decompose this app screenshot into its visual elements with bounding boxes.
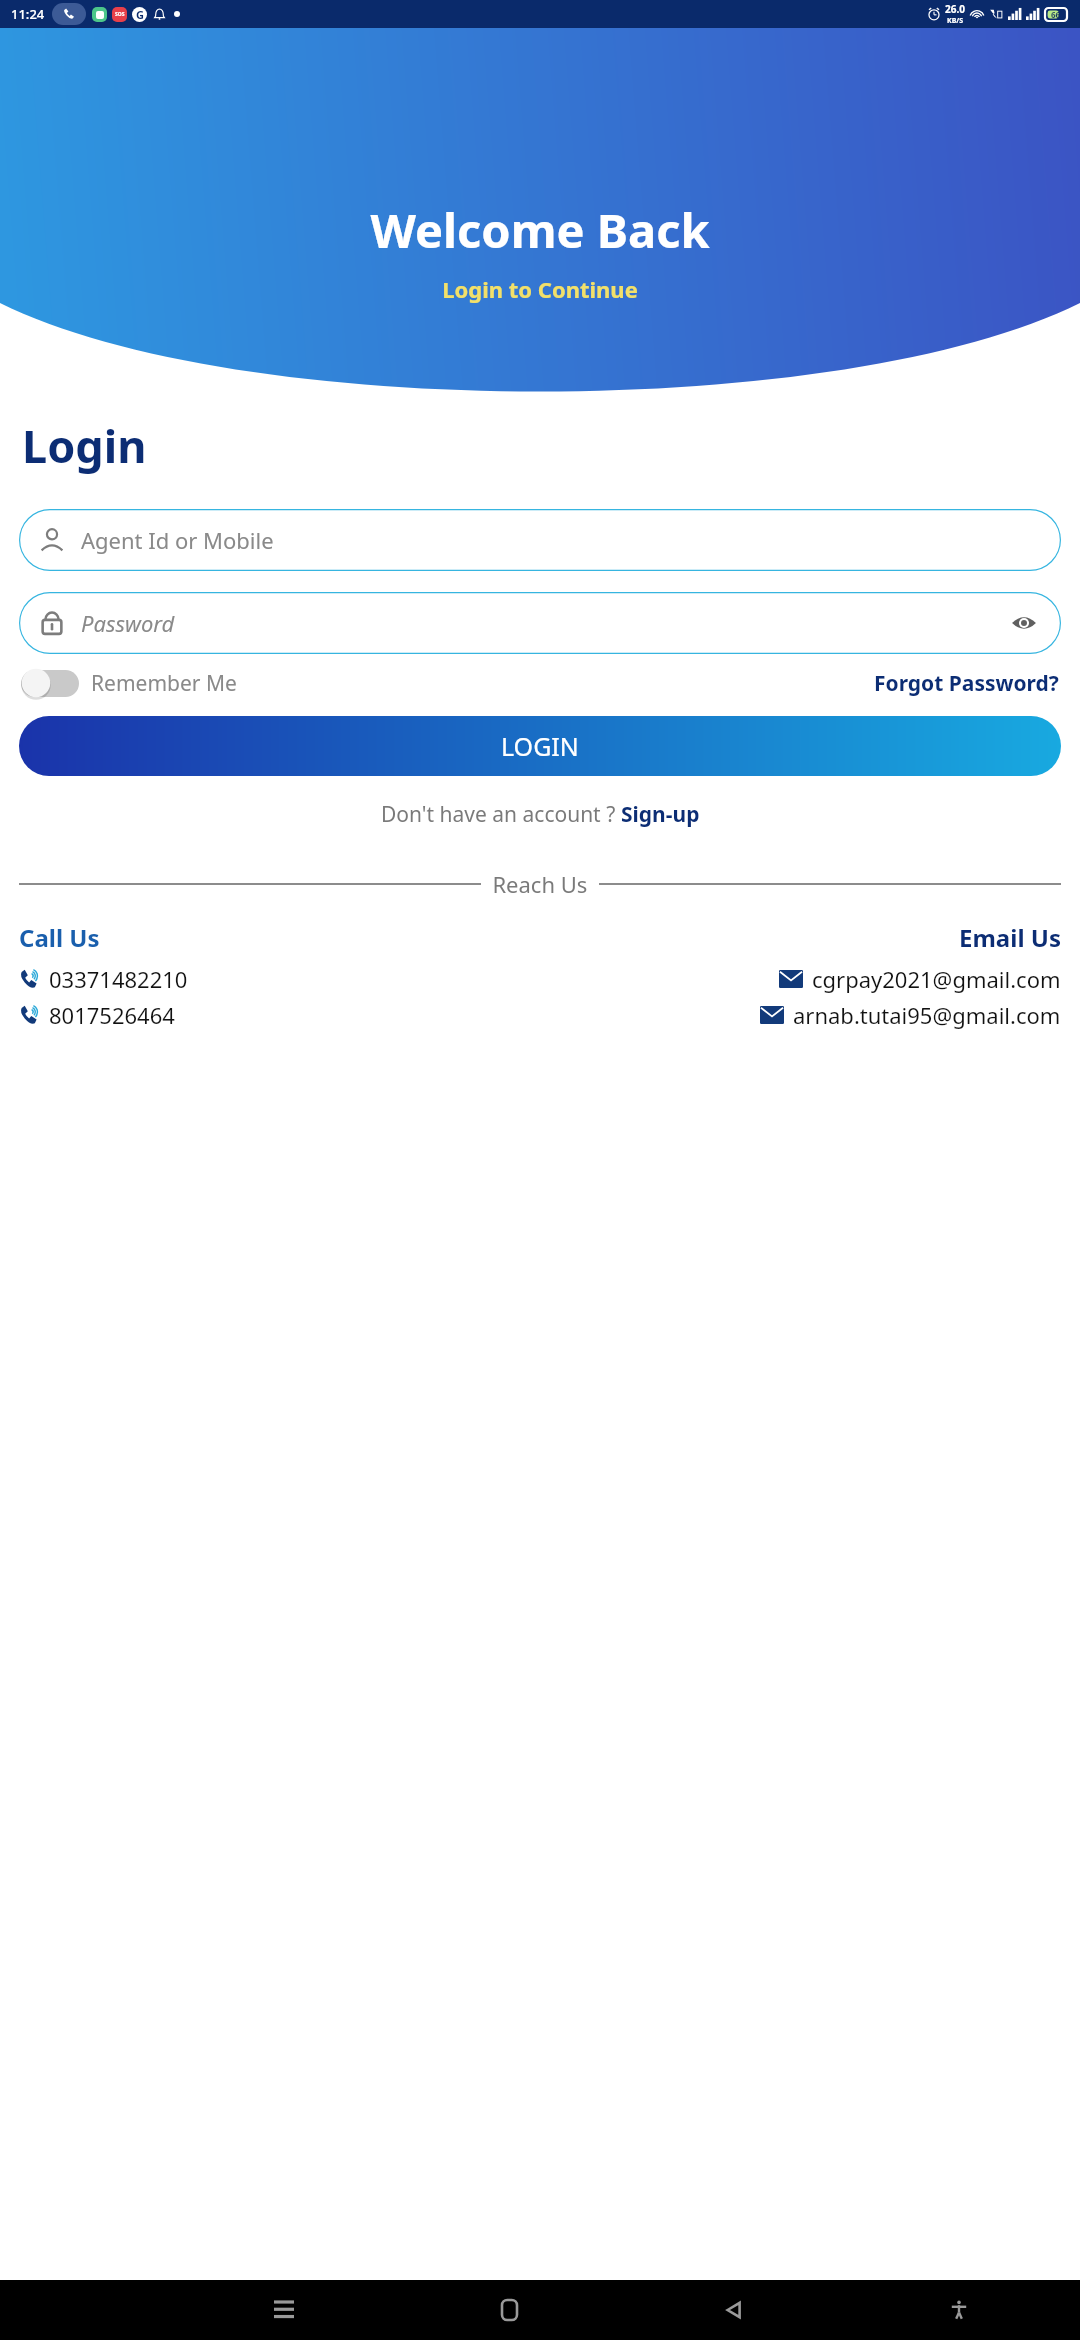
button[interactable]: LOGIN [19,716,1061,776]
other: Call [19,1004,41,1026]
button[interactable]: Sign-up [621,800,700,829]
staticText: cgrpay2021@gmail.com [812,964,1061,994]
button[interactable]: Email [779,964,1061,994]
staticText: Welcome Back [370,198,710,262]
other: Email [779,970,803,988]
staticText: arnab.tutai95@gmail.com [793,1000,1061,1030]
other: Email [760,1006,784,1024]
staticText: 26.0 [945,2,965,16]
button[interactable]: Email [760,1000,1061,1030]
staticText: 8017526464 [49,1000,175,1030]
staticText: SOS [115,11,125,18]
button[interactable]: Agent Id or Mobile [19,509,1061,571]
staticText: KB/S [947,16,964,26]
staticText: Login [22,415,147,476]
staticText: 03371482210 [49,964,188,994]
staticText: 66 [1051,9,1061,20]
staticText: Sign-up [621,800,700,829]
button[interactable]: Forgot Password? [874,669,1059,698]
button[interactable]: Home [487,2288,531,2332]
button[interactable]: Back [712,2288,756,2332]
staticText: Email Us [959,921,1061,954]
staticText: Login to Continue [442,274,638,304]
other: Call [19,968,41,990]
button[interactable]: Call [19,964,188,994]
staticText: G [136,7,144,22]
button[interactable]: Remember Me [21,668,237,698]
staticText: Agent Id or Mobile [81,525,274,555]
staticText: Don't have an account ? [381,800,621,829]
button[interactable]: Show password [1007,606,1041,640]
button[interactable]: Accessibility [937,2288,981,2332]
staticText: Call Us [19,921,100,954]
staticText: Remember Me [91,669,237,698]
staticText: Forgot Password? [874,669,1059,698]
staticText: Password [81,608,175,638]
button[interactable]: Recents [262,2288,306,2332]
staticText: LOGIN [501,729,579,763]
button[interactable]: Call [19,1000,175,1030]
button[interactable]: Password [19,592,1061,654]
staticText: 11:24 [11,5,45,23]
staticText: Reach Us [481,869,599,899]
